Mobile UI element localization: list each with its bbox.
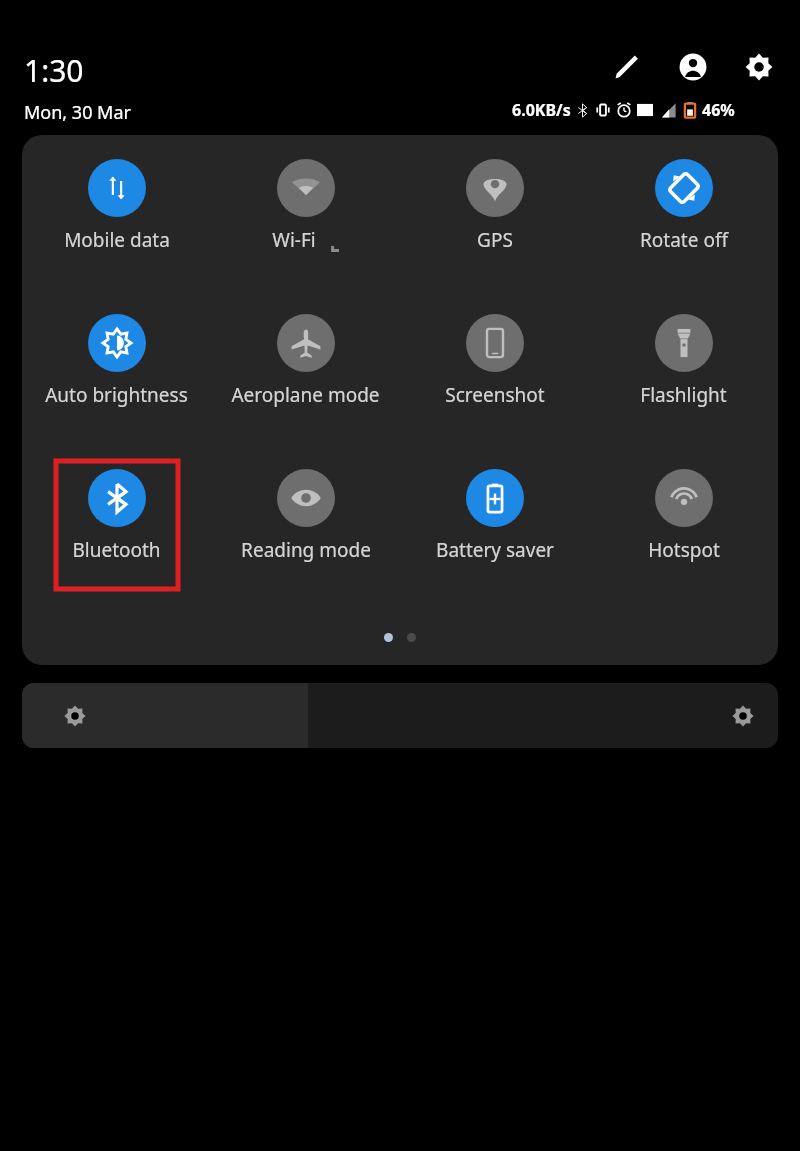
button[interactable]: Aeroplane mode (211, 299, 400, 454)
button[interactable]: Bluetooth (22, 454, 211, 609)
staticText: Screenshot (445, 382, 545, 408)
button[interactable] (22, 683, 778, 748)
button[interactable]: Mobile data (22, 144, 211, 299)
staticText: 46% (702, 99, 735, 121)
staticText: Aeroplane mode (231, 382, 380, 408)
staticText: Mon, 30 Mar (24, 100, 131, 125)
button[interactable]: Auto brightness (22, 299, 211, 454)
button[interactable]: Hotspot (589, 454, 778, 609)
staticText: Auto brightness (45, 382, 188, 408)
staticText: Rotate off (640, 227, 728, 253)
button[interactable]: Reading mode (211, 454, 400, 609)
button[interactable]: Battery saver (400, 454, 589, 609)
button[interactable]: Wi-Fi (211, 144, 400, 299)
button[interactable]: Screenshot (400, 299, 589, 454)
staticText: GPS (477, 227, 513, 253)
staticText: Battery saver (436, 537, 554, 563)
staticText: 1:30 (24, 50, 84, 91)
staticText: Wi-Fi (272, 227, 316, 253)
staticText: Reading mode (241, 537, 371, 563)
button[interactable]: Rotate off (589, 144, 778, 299)
button[interactable]: Edit (606, 46, 648, 88)
staticText: Flashlight (640, 382, 727, 408)
button[interactable]: Settings (738, 46, 780, 88)
button[interactable]: GPS (400, 144, 589, 299)
button[interactable]: Flashlight (589, 299, 778, 454)
staticText: Mobile data (64, 227, 170, 253)
staticText: Hotspot (648, 537, 720, 563)
staticText: 6.0KB/s (512, 99, 571, 121)
button[interactable]: Account (672, 46, 714, 88)
staticText: Bluetooth (72, 537, 161, 563)
